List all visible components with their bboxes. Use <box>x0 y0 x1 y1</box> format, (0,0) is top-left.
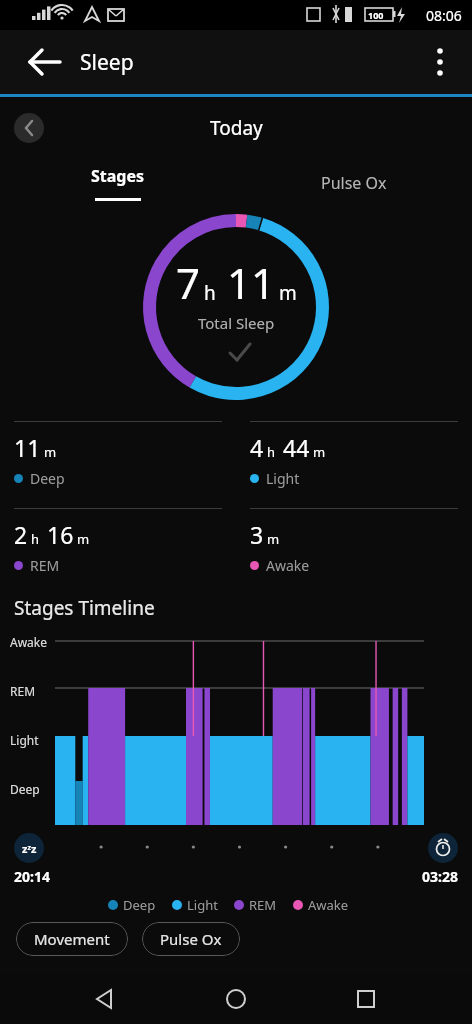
staticText: Movement <box>34 929 110 949</box>
staticText: 20:14 <box>14 867 50 886</box>
staticText: Deep <box>10 781 40 797</box>
button[interactable]: Sleep start <box>14 833 44 863</box>
staticText: m <box>77 530 90 548</box>
staticText: m <box>279 280 297 306</box>
staticText: m <box>267 530 280 548</box>
staticText: h <box>267 443 276 461</box>
staticText: Light <box>266 469 300 488</box>
staticText: 16 <box>47 519 74 550</box>
staticText: REM <box>249 896 277 914</box>
staticText: Awake <box>308 896 349 914</box>
staticText: Deep <box>30 469 65 488</box>
staticText: 44 <box>283 432 310 463</box>
staticText: Light <box>10 732 39 748</box>
staticText: Sleep <box>80 48 134 77</box>
staticText: Pulse Ox <box>160 929 222 949</box>
button[interactable]: Movement <box>16 922 128 956</box>
button[interactable]: Recents <box>342 975 390 1023</box>
button[interactable]: Back <box>14 40 58 84</box>
button[interactable]: Stages <box>0 159 236 207</box>
staticText: 11 <box>227 254 276 311</box>
button[interactable]: Pulse Ox <box>236 159 472 207</box>
staticText: REM <box>10 683 36 699</box>
staticText: m <box>313 443 326 461</box>
staticText: 08:06 <box>426 6 462 25</box>
staticText: Awake <box>266 556 310 575</box>
staticText: 03:28 <box>422 867 458 886</box>
staticText: h <box>31 530 40 548</box>
staticText: Awake <box>10 634 48 650</box>
staticText: Deep <box>123 896 156 914</box>
button[interactable]: Previous day <box>14 113 44 143</box>
staticText: Total Sleep <box>198 313 275 333</box>
staticText: REM <box>30 556 60 575</box>
staticText: Stages Timeline <box>14 595 155 621</box>
button[interactable]: Back <box>82 975 130 1023</box>
staticText: Pulse Ox <box>321 172 387 194</box>
staticText: 4 <box>250 432 264 463</box>
button[interactable]: Home <box>212 975 260 1023</box>
staticText: h <box>204 280 216 306</box>
staticText: zᶻz <box>22 841 37 856</box>
button[interactable]: Wake time <box>428 833 458 863</box>
button[interactable]: More options <box>418 40 462 84</box>
staticText: m <box>44 443 57 461</box>
staticText: 100 <box>368 9 384 21</box>
staticText: 7 <box>176 254 201 311</box>
staticText: 11 <box>14 432 41 463</box>
staticText: 2 <box>14 519 28 550</box>
button[interactable]: Pulse Ox <box>142 922 240 956</box>
staticText: Light <box>187 896 218 914</box>
staticText: 3 <box>250 519 264 550</box>
staticText: Stages <box>91 165 145 187</box>
staticText: Today <box>210 115 263 141</box>
